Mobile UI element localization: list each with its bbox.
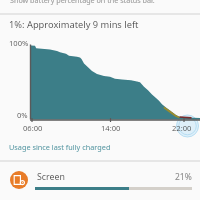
staticText: 21%	[175, 171, 192, 183]
staticText: 0%	[17, 110, 28, 120]
staticText: 1%: Approximately 9 mins left	[9, 18, 139, 31]
staticText: Usage since last fully charged	[9, 142, 111, 152]
staticText: Screen	[37, 171, 65, 183]
staticText: 100%	[9, 38, 29, 48]
staticText: 06:00	[23, 123, 43, 133]
staticText: Show battery percentage on the status ba…	[10, 0, 155, 5]
button[interactable]: Show battery percentage on the status ba…	[0, 0, 200, 13]
staticText: 22:00	[172, 123, 192, 133]
button[interactable]: Screen	[0, 161, 200, 200]
staticText: 14:00	[101, 123, 121, 133]
